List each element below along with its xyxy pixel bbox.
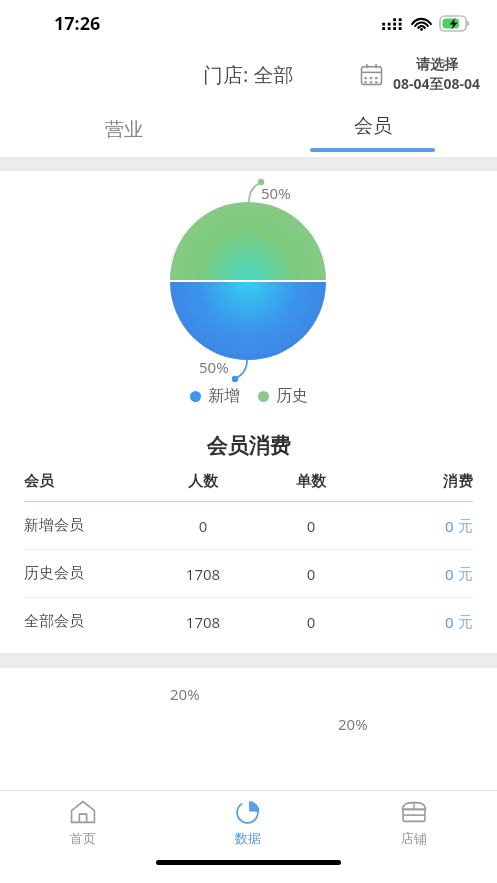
staticText: 会员 xyxy=(354,114,392,138)
staticText: 历史 xyxy=(276,386,308,406)
staticText: 0 xyxy=(257,516,365,536)
staticText: 人数 xyxy=(149,472,257,491)
staticText: 首页 xyxy=(70,830,96,846)
button[interactable]: 营业 xyxy=(0,102,248,157)
button[interactable]: 选择日期 xyxy=(356,52,485,97)
staticText: 历史会员 xyxy=(24,564,149,583)
staticText: 会员 xyxy=(24,472,149,491)
staticText: 0 xyxy=(149,516,257,536)
staticText: 单数 xyxy=(257,472,365,491)
button[interactable]: 全部会员 xyxy=(24,598,473,645)
staticText: 1708 xyxy=(149,564,257,584)
other: 选择日期 xyxy=(360,64,383,86)
button[interactable]: 数据 xyxy=(165,795,331,850)
staticText: 0 xyxy=(257,612,365,632)
staticText: 元 xyxy=(458,565,473,584)
button[interactable]: 历史会员 xyxy=(24,550,473,597)
staticText: 50% xyxy=(199,357,229,377)
button[interactable]: 会员 xyxy=(248,102,497,157)
staticText: 数据 xyxy=(235,830,261,846)
staticText: 17:26 xyxy=(54,11,101,36)
staticText: 全部会员 xyxy=(24,612,149,631)
staticText: 0 xyxy=(445,564,454,584)
staticText: 元 xyxy=(458,613,473,632)
staticText: 新增 xyxy=(208,386,240,406)
staticText: 50% xyxy=(261,183,291,203)
button[interactable]: 店铺 xyxy=(331,795,497,850)
staticText: 0 xyxy=(445,612,454,632)
staticText: 1708 xyxy=(149,612,257,632)
staticText: 元 xyxy=(458,517,473,536)
staticText: 0 xyxy=(257,564,365,584)
button[interactable]: 新增会员 xyxy=(24,502,473,549)
staticText: 消费 xyxy=(365,472,473,491)
staticText: 08-04至08-04 xyxy=(393,74,481,93)
staticText: 20% xyxy=(170,684,200,704)
staticText: 店铺 xyxy=(401,830,427,846)
staticText: 会员消费 xyxy=(0,433,497,459)
staticText: 请选择 xyxy=(416,56,458,74)
staticText: 门店: 全部 xyxy=(203,61,294,88)
staticText: 0 xyxy=(445,516,454,536)
button[interactable]: 首页 xyxy=(0,795,165,850)
staticText: 20% xyxy=(338,714,368,734)
button[interactable]: 门店: 全部 xyxy=(197,55,300,94)
staticText: 新增会员 xyxy=(24,516,149,535)
staticText: 营业 xyxy=(105,118,143,142)
